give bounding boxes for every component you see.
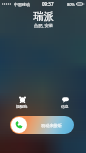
staticText: 09:37: [42, 1, 54, 7]
staticText: 瑞派: [33, 10, 54, 23]
staticText: 中国移动: [14, 2, 30, 7]
staticText: 提醒我: [16, 104, 28, 109]
staticText: 80%: [67, 2, 75, 7]
button[interactable]: 滑动来接听: [10, 116, 74, 134]
staticText: 信息: [61, 104, 69, 109]
button[interactable]: 信息: [51, 96, 79, 109]
button[interactable]: 提醒我: [8, 96, 36, 109]
staticText: 合肥, 安徽: [34, 23, 53, 29]
staticText: 滑动来接听: [41, 123, 62, 128]
